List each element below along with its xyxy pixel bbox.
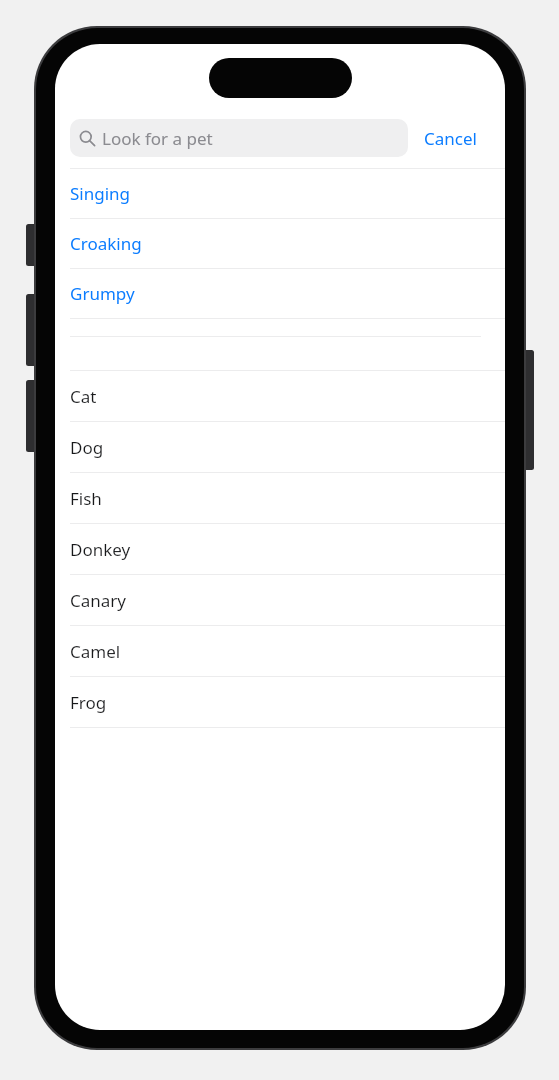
staticText: Fish xyxy=(70,487,102,510)
button[interactable]: Search xyxy=(70,119,408,157)
staticText: Croaking xyxy=(70,232,142,255)
staticText: Look for a pet xyxy=(102,127,213,150)
staticText: Singing xyxy=(70,182,131,205)
staticText: Camel xyxy=(70,640,121,663)
staticText: Dog xyxy=(70,436,104,459)
staticText: Donkey xyxy=(70,538,131,561)
button[interactable]: Cat xyxy=(55,371,505,421)
button[interactable]: Cancel xyxy=(408,119,493,157)
button[interactable]: Croaking xyxy=(55,219,505,268)
button[interactable]: Singing xyxy=(55,169,505,218)
staticText: Frog xyxy=(70,691,107,714)
button[interactable]: Fish xyxy=(55,473,505,523)
staticText: Cat xyxy=(70,385,97,408)
staticText: Canary xyxy=(70,589,127,612)
button[interactable]: Frog xyxy=(55,677,505,727)
staticText: Grumpy xyxy=(70,282,135,305)
other: Search xyxy=(79,130,96,147)
button[interactable]: Canary xyxy=(55,575,505,625)
button[interactable]: Camel xyxy=(55,626,505,676)
button[interactable]: Donkey xyxy=(55,524,505,574)
staticText: Cancel xyxy=(424,127,477,150)
button[interactable]: Dog xyxy=(55,422,505,472)
button[interactable]: Grumpy xyxy=(55,269,505,318)
